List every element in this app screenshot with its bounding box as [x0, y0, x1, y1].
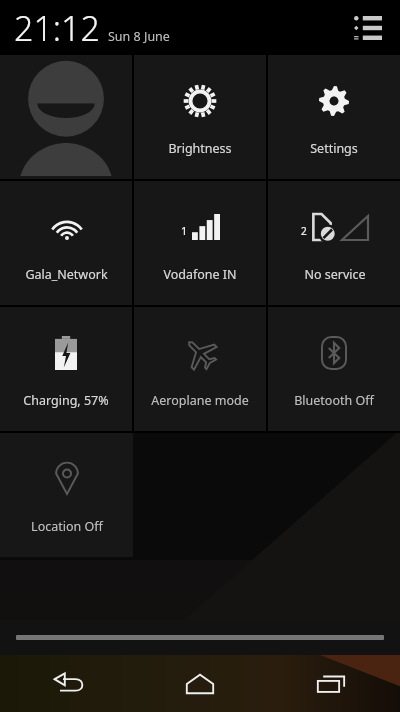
button[interactable]: Settings — [268, 55, 400, 179]
button[interactable]: 1 — [134, 181, 266, 305]
button[interactable]: Collapse panel — [0, 620, 400, 655]
staticText: Sun 8 June — [108, 28, 170, 45]
button[interactable]: Charging, 57% — [0, 307, 132, 431]
staticText: Charging, 57% — [23, 392, 109, 409]
staticText: Bluetooth Off — [294, 392, 374, 409]
button[interactable]: Bluetooth Off — [268, 307, 400, 431]
button[interactable]: Recent apps — [303, 655, 359, 712]
button[interactable]: Aeroplane mode — [134, 307, 266, 431]
staticText: Vodafone IN — [163, 266, 237, 283]
staticText: Aeroplane mode — [151, 392, 249, 409]
other: User profile — [11, 58, 121, 176]
button[interactable]: 2 — [268, 181, 400, 305]
button[interactable]: User profile — [0, 55, 132, 179]
staticText: No service — [304, 266, 366, 283]
button[interactable]: Brightness — [134, 55, 266, 179]
staticText: 2 — [301, 224, 307, 238]
staticText: Gala_Network — [25, 266, 108, 283]
staticText: 1 — [181, 223, 188, 238]
button[interactable]: Back — [41, 655, 97, 712]
button[interactable]: Location Off — [0, 433, 133, 557]
button[interactable]: Gala_Network — [0, 181, 132, 305]
staticText: 21:12 — [14, 5, 100, 51]
staticText: Settings — [310, 140, 358, 157]
button[interactable]: Home — [172, 655, 228, 712]
button[interactable]: Notifications list — [350, 11, 384, 45]
staticText: Brightness — [168, 140, 232, 157]
staticText: Location Off — [31, 518, 103, 535]
